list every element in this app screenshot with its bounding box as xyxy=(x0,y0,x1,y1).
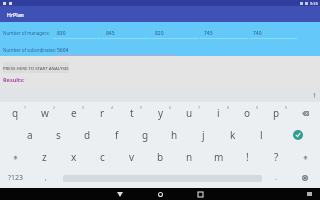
button[interactable]: c xyxy=(88,146,117,168)
button[interactable]: 745 xyxy=(200,28,248,39)
staticText: HrPlan xyxy=(7,11,24,18)
staticText: a xyxy=(27,128,33,142)
staticText: y xyxy=(158,106,164,120)
staticText: o xyxy=(244,106,251,120)
button[interactable]: , xyxy=(33,168,59,188)
button[interactable]: Backspace xyxy=(291,102,320,124)
button[interactable]: o xyxy=(233,102,262,124)
staticText: 3 xyxy=(82,105,85,110)
staticText: 5604 xyxy=(57,47,69,54)
button[interactable]: ? xyxy=(262,146,291,168)
staticText: Results: xyxy=(3,76,25,83)
button[interactable]: b xyxy=(146,146,175,168)
staticText: h xyxy=(171,128,178,142)
button[interactable]: w xyxy=(30,102,59,124)
staticText: g xyxy=(142,128,149,142)
staticText: c xyxy=(100,150,105,164)
button[interactable]: j xyxy=(189,124,218,146)
staticText: i xyxy=(217,106,220,120)
button[interactable]: Home xyxy=(150,188,170,200)
staticText: p xyxy=(273,106,280,120)
staticText: 830 xyxy=(57,30,66,37)
staticText: k xyxy=(230,128,236,142)
button[interactable]: r xyxy=(88,102,117,124)
button[interactable]: Back xyxy=(110,188,130,200)
staticText: ! xyxy=(246,150,249,164)
button[interactable]: n xyxy=(175,146,204,168)
staticText: x xyxy=(71,150,77,164)
button[interactable]: Shift xyxy=(0,146,30,168)
button[interactable]: 740 xyxy=(249,28,297,39)
staticText: 4 xyxy=(111,105,114,110)
staticText: f xyxy=(115,128,119,142)
staticText: 9:35 xyxy=(310,1,318,6)
button[interactable]: 820 xyxy=(151,28,199,39)
staticText: ?123 xyxy=(8,173,24,183)
staticText: n xyxy=(186,150,193,164)
button[interactable]: x xyxy=(59,146,88,168)
button[interactable]: q xyxy=(0,102,30,124)
staticText: z xyxy=(42,150,47,164)
staticText: r xyxy=(100,106,105,120)
button[interactable]: Emoji xyxy=(292,168,318,188)
staticText: w xyxy=(41,106,49,120)
button[interactable]: p xyxy=(262,102,291,124)
button[interactable]: d xyxy=(73,124,102,146)
button[interactable]: a xyxy=(15,124,44,146)
staticText: q xyxy=(12,106,19,120)
button[interactable]: Shift xyxy=(291,146,320,168)
button[interactable]: v xyxy=(117,146,146,168)
staticText: 740 xyxy=(253,30,262,37)
button[interactable]: h xyxy=(160,124,189,146)
staticText: m xyxy=(214,150,224,164)
button[interactable]: 5604 xyxy=(55,45,175,56)
staticText: ? xyxy=(274,150,279,164)
staticText: Number of subordinates: xyxy=(3,47,57,53)
staticText: v xyxy=(129,150,135,164)
button[interactable]: s xyxy=(44,124,73,146)
staticText: d xyxy=(84,128,91,142)
button[interactable]: e xyxy=(59,102,88,124)
staticText: 8 xyxy=(227,105,230,110)
button[interactable]: 830 xyxy=(53,28,101,39)
staticText: u xyxy=(186,106,193,120)
button[interactable]: i xyxy=(204,102,233,124)
staticText: j xyxy=(202,128,205,142)
button[interactable]: ! xyxy=(233,146,262,168)
staticText: t xyxy=(130,106,134,120)
button[interactable]: k xyxy=(218,124,247,146)
staticText: 820 xyxy=(155,30,164,37)
button[interactable]: Voice input xyxy=(311,92,317,98)
button[interactable]: f xyxy=(102,124,131,146)
staticText: e xyxy=(71,106,77,120)
button[interactable]: Enter xyxy=(276,124,320,146)
button[interactable]: t xyxy=(117,102,146,124)
staticText: . xyxy=(275,173,277,183)
staticText: 845 xyxy=(106,30,115,37)
button[interactable]: l xyxy=(247,124,276,146)
button[interactable]: z xyxy=(30,146,59,168)
button[interactable]: y xyxy=(146,102,175,124)
button[interactable]: g xyxy=(131,124,160,146)
staticText: 7 xyxy=(198,105,201,110)
button[interactable]: 845 xyxy=(102,28,150,39)
staticText: b xyxy=(157,150,164,164)
button[interactable]: Recent apps xyxy=(190,188,210,200)
staticText: 2 xyxy=(53,105,56,110)
staticText: 9 xyxy=(256,105,259,110)
button[interactable]: PRESS HERE TO START ANALYSIS xyxy=(3,62,69,73)
staticText: 1 xyxy=(24,105,27,110)
button[interactable]: m xyxy=(204,146,233,168)
staticText: Number of managers: xyxy=(3,30,50,36)
staticText: 745 xyxy=(204,30,213,37)
staticText: 0 xyxy=(285,105,288,110)
staticText: s xyxy=(56,128,61,142)
button[interactable]: ?123 xyxy=(1,168,31,188)
staticText: , xyxy=(45,173,47,183)
button[interactable]: u xyxy=(175,102,204,124)
staticText: PRESS HERE TO START ANALYSIS xyxy=(3,65,69,71)
staticText: 5 xyxy=(140,105,143,110)
